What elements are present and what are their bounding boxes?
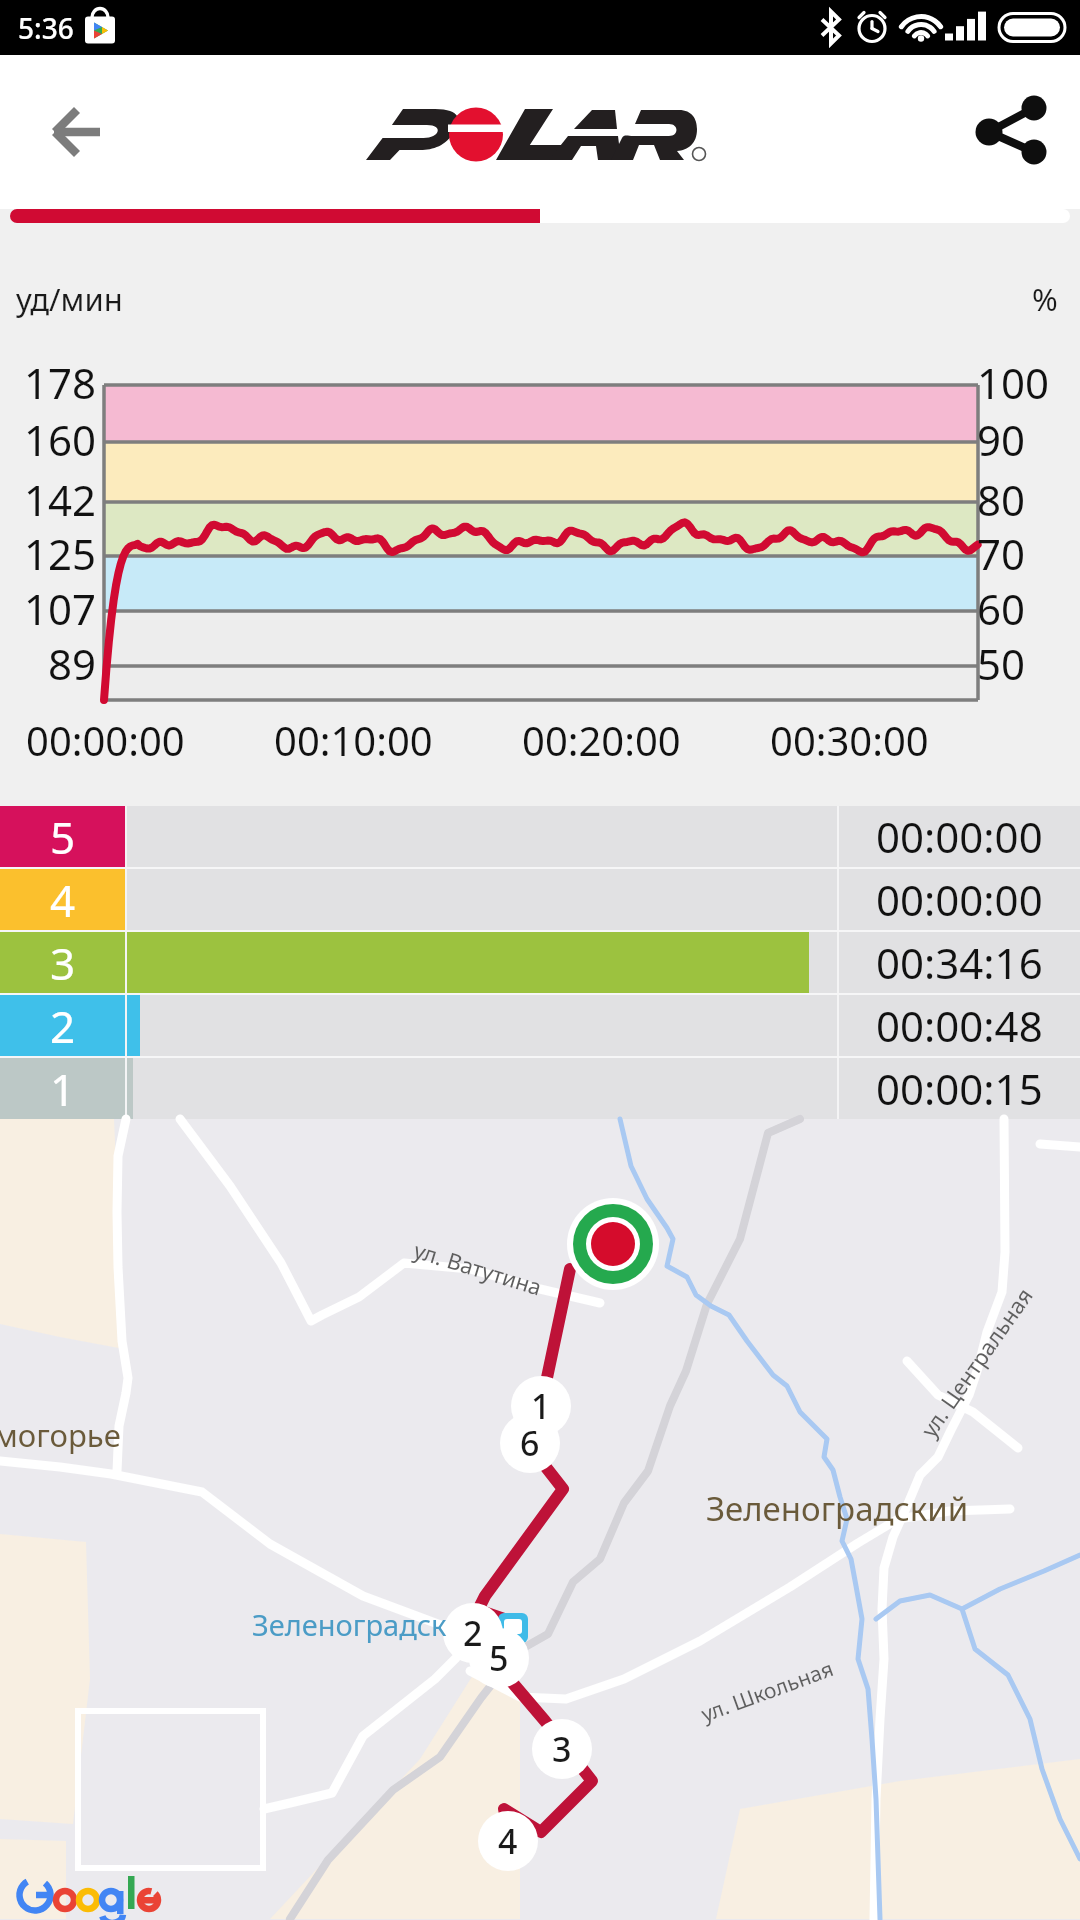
button[interactable]: 5 xyxy=(0,806,1080,867)
button[interactable]: Share xyxy=(962,82,1062,182)
staticText: 3 xyxy=(50,933,76,993)
button[interactable]: 1 xyxy=(0,1058,1080,1119)
staticText: 160 xyxy=(0,411,96,468)
staticText: 125 xyxy=(0,525,96,582)
staticText: 1 xyxy=(531,1383,551,1429)
staticText: Зеленоградский xyxy=(706,1486,969,1531)
staticText: ул. Центральная xyxy=(913,1281,1039,1443)
staticText: 00:00:48 xyxy=(876,997,1043,1054)
button[interactable]: Route map xyxy=(0,1119,1080,1920)
staticText: 4 xyxy=(498,1818,518,1864)
staticText: ул. Ватутина xyxy=(410,1234,546,1302)
staticText: уд/мин xyxy=(16,278,123,320)
staticText: 2 xyxy=(463,1610,483,1656)
staticText: 00:00:00 xyxy=(876,871,1043,928)
staticText: 5 xyxy=(50,807,76,867)
staticText: 107 xyxy=(0,580,96,637)
staticText: 00:00:00 xyxy=(26,713,185,767)
staticText: 3 xyxy=(552,1726,572,1772)
staticText: 70 xyxy=(977,525,1073,582)
staticText: 00:00:15 xyxy=(876,1060,1043,1117)
staticText: 6 xyxy=(520,1420,540,1466)
staticText: 4 xyxy=(50,870,76,930)
staticText: 90 xyxy=(977,411,1073,468)
staticText: 00:10:00 xyxy=(274,713,433,767)
button[interactable]: Back xyxy=(27,82,127,182)
button[interactable]: 2 xyxy=(0,995,1080,1056)
staticText: 100 xyxy=(977,354,1073,411)
staticText: Зеленоградск xyxy=(252,1605,447,1644)
staticText: 1 xyxy=(50,1059,76,1119)
staticText: 5:36 xyxy=(18,9,74,47)
staticText: 89 xyxy=(0,635,96,692)
staticText: ул. Школьная xyxy=(697,1654,838,1729)
staticText: 00:00:00 xyxy=(876,808,1043,865)
button[interactable]: 4 xyxy=(0,869,1080,930)
staticText: 2 xyxy=(50,996,76,1056)
staticText: 142 xyxy=(0,471,96,528)
staticText: 00:34:16 xyxy=(876,934,1043,991)
staticText: 50 xyxy=(977,635,1073,692)
staticText: 00:20:00 xyxy=(522,713,681,767)
staticText: 00:30:00 xyxy=(770,713,929,767)
staticText: 80 xyxy=(977,471,1073,528)
staticText: 5 xyxy=(489,1635,509,1681)
button[interactable]: 3 xyxy=(0,932,1080,993)
staticText: 178 xyxy=(0,354,96,411)
staticText: % xyxy=(1032,278,1058,320)
staticText: 60 xyxy=(977,580,1073,637)
button[interactable]: Heart rate tab xyxy=(10,209,540,223)
staticText: могорье xyxy=(0,1414,121,1456)
